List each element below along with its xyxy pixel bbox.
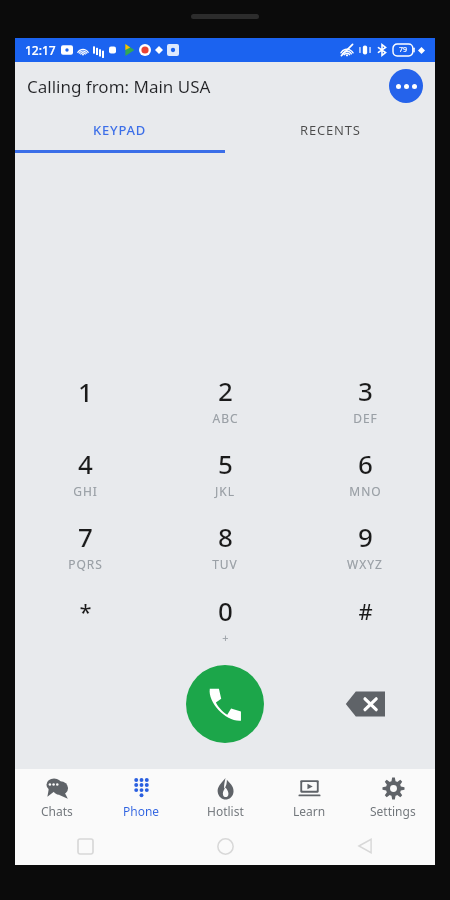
button[interactable]: More options — [389, 69, 423, 103]
staticText: Learn — [293, 803, 326, 819]
button[interactable]: Chats — [15, 769, 99, 827]
button[interactable]: 8 — [155, 509, 295, 582]
staticText: 0 — [218, 593, 233, 628]
button[interactable]: Recent apps — [15, 827, 155, 865]
staticText: Hotlist — [207, 803, 244, 819]
staticText: JKL — [215, 483, 235, 499]
staticText: Calling from: Main USA — [27, 75, 211, 98]
button[interactable]: 5 — [155, 436, 295, 509]
button[interactable]: 2 — [155, 363, 295, 436]
button[interactable]: 7 — [15, 509, 155, 582]
button[interactable]: Delete — [343, 688, 387, 720]
button[interactable]: Hotlist — [183, 769, 267, 827]
staticText: GHI — [73, 483, 98, 499]
button[interactable]: 0 — [155, 582, 295, 655]
staticText: WXYZ — [347, 556, 383, 572]
staticText: DEF — [353, 410, 378, 426]
staticText: MNO — [349, 483, 382, 499]
staticText: 79 — [399, 45, 408, 55]
staticText: 12:17 — [25, 42, 56, 58]
button[interactable]: KEYPAD — [15, 110, 225, 150]
staticText: PQRS — [68, 556, 103, 572]
button[interactable]: Settings — [351, 769, 435, 827]
button[interactable]: 4 — [15, 436, 155, 509]
button[interactable]: # — [295, 582, 435, 655]
staticText: 4 — [78, 446, 93, 481]
button[interactable]: 9 — [295, 509, 435, 582]
staticText: 6 — [358, 446, 373, 481]
button[interactable]: Learn — [267, 769, 351, 827]
staticText: 9 — [358, 519, 373, 554]
staticText: 1 — [78, 374, 93, 409]
button[interactable]: 1 — [15, 363, 155, 436]
staticText: # — [358, 596, 373, 626]
staticText: Phone — [123, 803, 160, 819]
button[interactable]: Phone — [99, 769, 183, 827]
staticText: + — [222, 630, 230, 645]
staticText: 8 — [218, 519, 233, 554]
staticText: * — [79, 596, 92, 626]
button[interactable]: 6 — [295, 436, 435, 509]
staticText: 7 — [78, 519, 93, 554]
staticText: 3 — [358, 373, 373, 408]
button[interactable]: Back — [295, 827, 435, 865]
button[interactable]: RECENTS — [225, 110, 435, 150]
staticText: 5 — [218, 446, 233, 481]
button[interactable]: Home — [155, 827, 295, 865]
button[interactable]: Call — [186, 665, 264, 743]
staticText: KEYPAD — [93, 121, 147, 139]
staticText: Settings — [370, 803, 416, 819]
staticText: TUV — [212, 556, 238, 572]
button[interactable]: * — [15, 582, 155, 655]
staticText: RECENTS — [300, 121, 361, 139]
staticText: 2 — [218, 373, 233, 408]
button[interactable]: 3 — [295, 363, 435, 436]
staticText: ABC — [212, 410, 239, 426]
staticText: Chats — [41, 803, 73, 819]
